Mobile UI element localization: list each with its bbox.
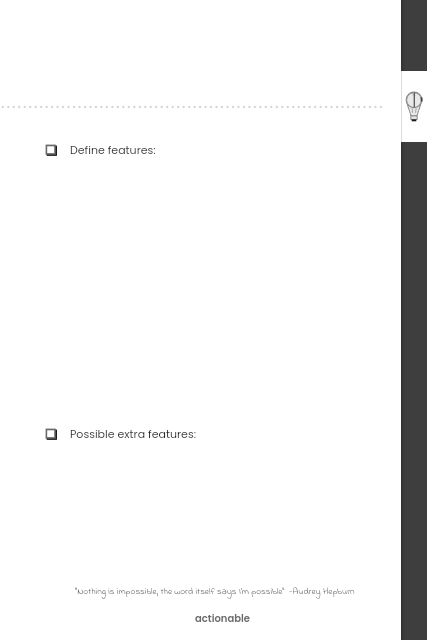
staticText: Define features:	[70, 142, 156, 157]
staticText: actionable	[195, 611, 250, 625]
staticText: "Nothing is impossible, the word itself …	[75, 585, 355, 598]
button[interactable]: Ideas	[401, 71, 427, 142]
button[interactable]: Possible extra features:	[45, 426, 385, 441]
staticText: Possible extra features:	[70, 426, 196, 441]
button[interactable]: Define features:	[45, 142, 385, 157]
